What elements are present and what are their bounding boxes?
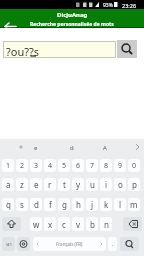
button[interactable]: d (30, 198, 42, 211)
staticText: z (20, 179, 24, 190)
staticText: b (90, 219, 95, 230)
button[interactable]: 4 (44, 159, 56, 172)
button[interactable]: 9 (114, 159, 126, 172)
button[interactable]: y (72, 178, 84, 191)
staticText: d (70, 144, 74, 152)
staticText: k (104, 199, 109, 210)
button[interactable]: 2 (16, 159, 28, 172)
button[interactable]: i (100, 178, 112, 191)
button[interactable]: ?ou??s (3, 41, 116, 58)
staticText: 4 (48, 161, 53, 171)
staticText: o (118, 179, 123, 190)
button[interactable]: . (108, 237, 117, 251)
button[interactable]: z (16, 178, 28, 191)
button[interactable]: e (30, 178, 42, 191)
staticText: 7 (90, 161, 95, 171)
staticText: q (6, 199, 11, 210)
button[interactable]: o (114, 178, 126, 191)
staticText: !#1 (6, 242, 12, 247)
button[interactable]: 0 (128, 159, 140, 172)
button[interactable]: l (114, 198, 126, 211)
button[interactable]: q (2, 198, 14, 211)
staticText: 3 (34, 161, 39, 171)
staticText: p (132, 179, 137, 190)
button[interactable]: c (58, 217, 70, 231)
staticText: a (6, 179, 11, 190)
staticText: A (103, 144, 107, 152)
staticText: x (48, 219, 53, 230)
staticText: e (34, 144, 38, 152)
staticText: u (90, 179, 95, 190)
button[interactable]: 8 (100, 159, 112, 172)
button[interactable]: r (44, 178, 56, 191)
button[interactable]: 7 (86, 159, 98, 172)
staticText: s (20, 199, 24, 210)
button[interactable] (117, 40, 137, 58)
staticText: 6 (76, 161, 81, 171)
button[interactable]: h (72, 198, 84, 211)
staticText: t (63, 179, 66, 190)
button[interactable]: k (100, 198, 112, 211)
button[interactable] (5, 23, 17, 30)
button[interactable]: v (72, 217, 84, 231)
button[interactable]: w (30, 217, 42, 231)
staticText: e (34, 179, 39, 190)
staticText: . (112, 240, 114, 248)
button[interactable]: g (58, 198, 70, 211)
button[interactable]: n (100, 217, 112, 231)
button[interactable]: x (44, 217, 56, 231)
staticText: Français (FR) (56, 241, 83, 247)
staticText: m (130, 199, 138, 210)
staticText: w (33, 219, 40, 230)
staticText: g (62, 199, 67, 210)
staticText: j (91, 199, 94, 210)
button[interactable]: j (86, 198, 98, 211)
button[interactable] (2, 217, 21, 231)
button[interactable]: 5 (58, 159, 70, 172)
button[interactable]: s (16, 198, 28, 211)
button[interactable]: !#1 (2, 237, 15, 251)
staticText: 1 (6, 161, 11, 171)
staticText: f (49, 199, 52, 210)
staticText: ?ou??s (6, 44, 40, 59)
staticText: n (104, 219, 109, 230)
button[interactable]: f (44, 198, 56, 211)
button[interactable]: Français (FR) (33, 237, 106, 251)
button[interactable]: u (86, 178, 98, 191)
staticText: DicjuAnag (57, 11, 88, 19)
staticText: 0 (132, 161, 137, 171)
button[interactable] (120, 237, 139, 251)
button[interactable]: 6 (72, 159, 84, 172)
button[interactable]: 3 (30, 159, 42, 172)
staticText: h (76, 199, 81, 210)
staticText: 5 (62, 161, 67, 171)
staticText: v (76, 219, 81, 230)
staticText: c (62, 219, 66, 230)
staticText: 23:26 (122, 2, 137, 9)
button[interactable]: t (58, 178, 70, 191)
staticText: i (105, 179, 108, 190)
button[interactable]: 1 (2, 159, 14, 172)
staticText: r (48, 179, 52, 190)
staticText: Recherche personnalisée de mots (30, 21, 114, 28)
button[interactable]: a (2, 178, 14, 191)
button[interactable]: b (86, 217, 98, 231)
button[interactable]: p (128, 178, 140, 191)
staticText: 2 (20, 161, 25, 171)
button[interactable] (123, 217, 142, 231)
staticText: 93% (103, 2, 113, 9)
button[interactable] (17, 237, 30, 251)
staticText: l (119, 199, 122, 210)
staticText: d (34, 199, 39, 210)
button[interactable]: m (128, 198, 140, 211)
staticText: 9 (118, 161, 123, 171)
staticText: y (76, 179, 81, 190)
staticText: 8 (104, 161, 109, 171)
